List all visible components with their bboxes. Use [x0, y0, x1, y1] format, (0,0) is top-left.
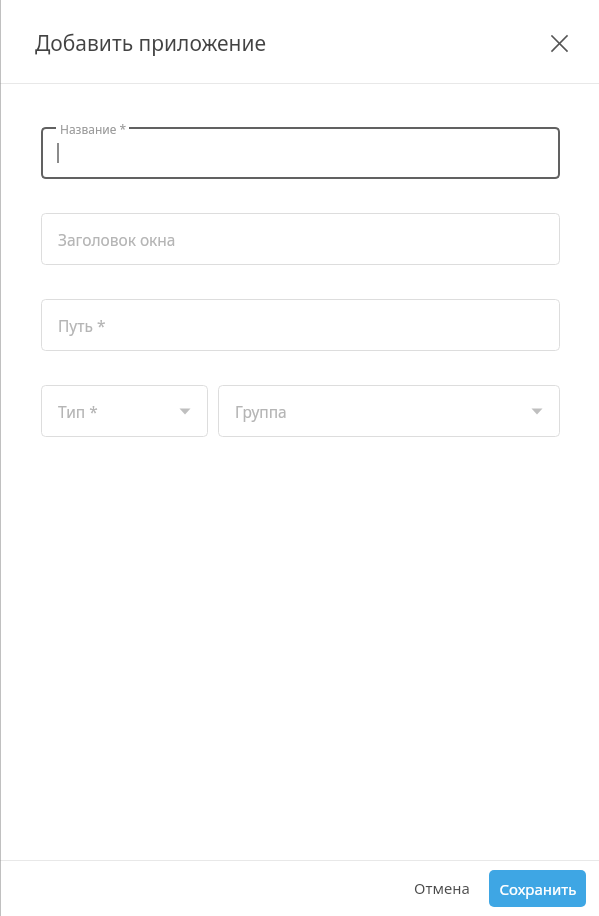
button[interactable]: Заголовок окна — [41, 213, 560, 265]
button[interactable]: Закрыть — [544, 28, 574, 58]
staticText: Название * — [60, 121, 127, 137]
staticText: Сохранить — [499, 879, 577, 899]
staticText: Тип * — [58, 401, 98, 422]
button[interactable]: Сохранить — [489, 870, 586, 907]
staticText: Отмена — [414, 878, 470, 898]
staticText: Добавить приложение — [35, 29, 267, 58]
button[interactable]: Отмена — [402, 869, 482, 907]
button[interactable]: Путь * — [41, 299, 560, 351]
staticText: Заголовок окна — [58, 229, 176, 250]
staticText: Группа — [235, 401, 287, 422]
button[interactable]: Тип * — [41, 385, 208, 437]
staticText: Путь * — [58, 315, 106, 336]
button[interactable] — [41, 127, 560, 179]
button[interactable]: Группа — [218, 385, 560, 437]
